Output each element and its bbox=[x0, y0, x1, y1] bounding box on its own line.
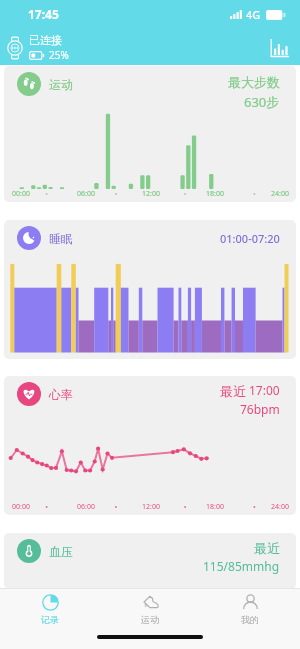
staticText: 06:00 bbox=[77, 502, 95, 511]
staticText: 已连接 bbox=[29, 33, 62, 47]
staticText: 630步 bbox=[244, 93, 280, 111]
button[interactable]: 血压 bbox=[4, 533, 296, 589]
staticText: 12:00 bbox=[142, 502, 160, 511]
button[interactable]: 睡眠 bbox=[4, 220, 296, 359]
staticText: 运动 bbox=[141, 614, 159, 625]
staticText: 最近 bbox=[220, 383, 246, 399]
staticText: 115/85mmhg bbox=[203, 558, 280, 574]
staticText: 4G bbox=[246, 7, 261, 22]
staticText: 最大步数 bbox=[228, 74, 280, 90]
staticText: 24:00 bbox=[271, 189, 289, 198]
staticText: 24:00 bbox=[271, 502, 289, 511]
staticText: 00:00 bbox=[12, 189, 30, 198]
staticText: 06:00 bbox=[77, 189, 95, 198]
staticText: 运动 bbox=[49, 77, 73, 92]
staticText: 17:45 bbox=[28, 6, 59, 22]
staticText: 01:00-07:20 bbox=[220, 231, 280, 246]
button[interactable]: 运动 bbox=[4, 66, 296, 202]
staticText: 17:00 bbox=[249, 382, 280, 398]
staticText: 记录 bbox=[41, 614, 59, 625]
staticText: 我的 bbox=[241, 614, 259, 625]
staticText: 最近 bbox=[254, 540, 280, 556]
staticText: 12:00 bbox=[142, 189, 160, 198]
staticText: 血压 bbox=[49, 544, 73, 559]
button[interactable]: 我的 bbox=[200, 589, 300, 629]
staticText: 25% bbox=[49, 48, 69, 62]
button[interactable]: 运动 bbox=[100, 589, 200, 629]
staticText: 76bpm bbox=[240, 401, 280, 417]
button[interactable]: Statistics bbox=[270, 38, 290, 58]
staticText: 18:00 bbox=[206, 502, 224, 511]
staticText: 睡眠 bbox=[49, 231, 73, 246]
button[interactable]: 心率 bbox=[4, 376, 296, 515]
button[interactable]: 记录 bbox=[0, 589, 100, 629]
staticText: 18:00 bbox=[206, 189, 224, 198]
staticText: 心率 bbox=[49, 387, 73, 402]
staticText: 00:00 bbox=[12, 502, 30, 511]
